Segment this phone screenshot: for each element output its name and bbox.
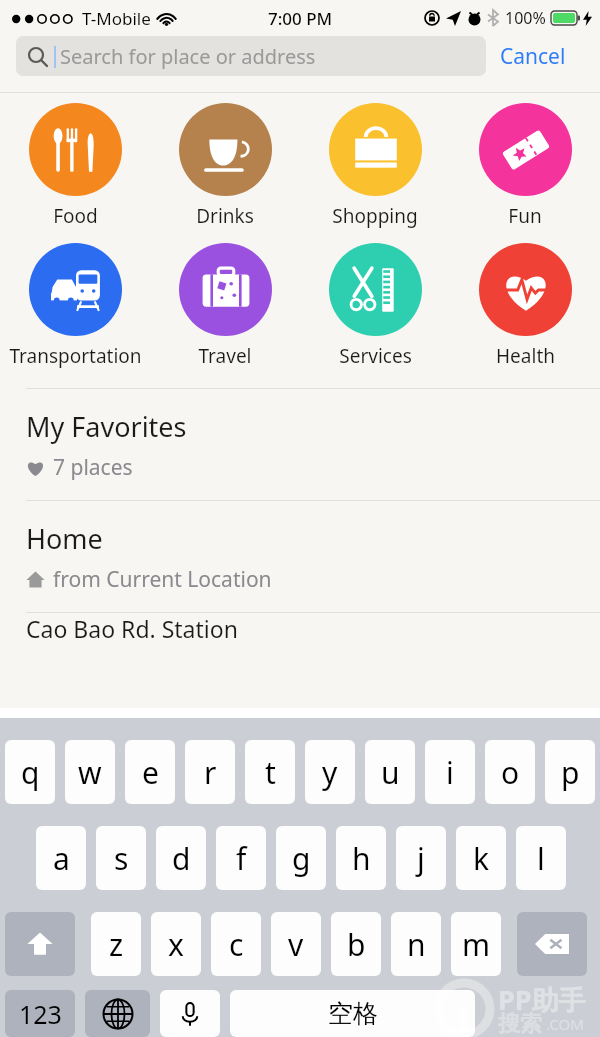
staticText: n [407,924,426,965]
staticText: g [292,838,311,879]
staticText: Home [26,520,103,557]
staticText: r [204,752,217,793]
button[interactable]: Shift [5,912,75,976]
button[interactable]: Cancel [496,38,570,75]
staticText: m [462,924,491,965]
button[interactable]: p [545,740,595,804]
staticText: t [265,752,276,793]
button[interactable]: Services [300,239,450,373]
staticText: u [381,752,400,793]
button[interactable]: x [151,912,201,976]
button[interactable]: i [425,740,475,804]
staticText: v [288,924,304,965]
button[interactable]: Dictation [160,990,220,1037]
button[interactable]: v [271,912,321,976]
staticText: PP助手 [498,981,586,1018]
staticText: 7:00 PM [268,7,333,30]
button[interactable]: a [36,826,86,890]
button[interactable]: Switch keyboard [85,990,150,1037]
button[interactable]: n [391,912,441,976]
staticText: l [537,838,545,879]
staticText: Transportation [9,343,142,369]
button[interactable]: Drinks [150,99,300,233]
staticText: Health [496,343,555,369]
staticText: 空格 [328,998,378,1029]
button[interactable]: w [65,740,115,804]
staticText: y [322,752,338,793]
staticText: d [172,838,191,879]
button[interactable]: e [125,740,175,804]
staticText: p [561,752,580,793]
button[interactable]: f [216,826,266,890]
button[interactable]: t [245,740,295,804]
button[interactable]: Backspace [517,912,587,976]
button[interactable]: c [211,912,261,976]
button[interactable]: 空格 [230,990,475,1037]
button[interactable]: l [516,826,566,890]
staticText: z [109,924,124,965]
staticText: Food [53,203,98,229]
staticText: Search for place or address [60,43,316,70]
button[interactable]: h [336,826,386,890]
button[interactable]: b [331,912,381,976]
staticText: c [229,924,244,965]
staticText: o [501,752,520,793]
staticText: Fun [508,203,542,229]
staticText: h [352,838,371,879]
button[interactable]: Health [450,239,600,373]
staticText: Services [339,343,412,369]
staticText: 搜索 [498,1010,542,1037]
staticText: Travel [198,343,252,369]
staticText: s [114,838,129,879]
staticText: Shopping [332,203,418,229]
staticText: q [21,752,40,793]
button[interactable]: r [185,740,235,804]
staticText: x [168,924,184,965]
staticText: i [446,752,454,793]
staticText: My Favorites [26,408,187,445]
button[interactable]: q [5,740,55,804]
staticText: a [53,838,70,879]
staticText: 100% [505,7,546,29]
button[interactable]: Home [0,501,600,612]
button[interactable]: Transportation [0,239,150,373]
staticText: from Current Location [53,565,272,594]
button[interactable]: k [456,826,506,890]
staticText: Cancel [500,42,566,71]
staticText: T-Mobile [82,7,151,30]
button[interactable]: Travel [150,239,300,373]
staticText: 7 places [53,453,133,482]
staticText: b [347,924,366,965]
staticText: k [473,838,490,879]
staticText: Cao Bao Rd. Station [26,613,238,644]
button[interactable]: z [91,912,141,976]
button[interactable]: Food [0,99,150,233]
staticText: .COM [546,1014,584,1034]
staticText: 123 [19,997,62,1031]
staticText: e [142,752,159,793]
button[interactable]: j [396,826,446,890]
button[interactable]: s [96,826,146,890]
button[interactable]: d [156,826,206,890]
button[interactable]: Fun [450,99,600,233]
button[interactable]: Shopping [300,99,450,233]
staticText: Drinks [196,203,254,229]
staticText: f [236,838,247,879]
button[interactable]: o [485,740,535,804]
staticText: j [417,838,425,879]
staticText: w [78,752,102,793]
button[interactable]: My Favorites [0,389,600,500]
button[interactable]: 123 [5,990,75,1037]
button[interactable]: u [365,740,415,804]
button[interactable]: m [451,912,501,976]
button[interactable]: g [276,826,326,890]
button[interactable]: Search for place or address [16,36,486,76]
button[interactable]: y [305,740,355,804]
